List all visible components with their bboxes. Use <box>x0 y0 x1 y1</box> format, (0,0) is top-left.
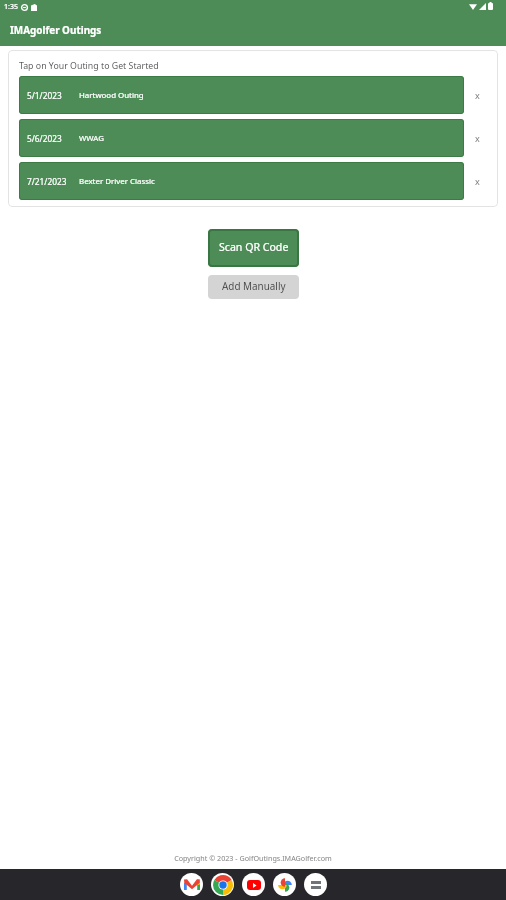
button[interactable]: Scan QR Code <box>208 229 299 267</box>
button[interactable]: Remove outing <box>464 119 487 157</box>
staticText: Hartwood Outing <box>79 90 144 101</box>
button[interactable]: Chrome <box>211 873 234 896</box>
staticText: x <box>475 132 480 144</box>
staticText: 1:35 <box>4 2 18 12</box>
button[interactable]: App <box>304 873 327 896</box>
button[interactable]: 5/6/2023 <box>19 119 464 157</box>
button[interactable]: 7/21/2023 <box>19 162 464 200</box>
staticText: x <box>475 175 480 187</box>
staticText: Add Manually <box>222 279 286 292</box>
staticText: 5/1/2023 <box>27 90 79 101</box>
staticText: x <box>475 89 480 101</box>
staticText: 7/21/2023 <box>27 176 79 187</box>
button[interactable]: Gmail <box>180 873 203 896</box>
button[interactable]: Google Photos <box>273 873 296 896</box>
button[interactable]: Add Manually <box>208 275 299 299</box>
button[interactable]: 5/1/2023 <box>19 76 464 114</box>
button[interactable]: Remove outing <box>464 162 487 200</box>
button[interactable]: YouTube <box>242 873 265 896</box>
staticText: IMAgolfer Outings <box>10 23 102 36</box>
staticText: Tap on Your Outing to Get Started <box>19 60 159 72</box>
staticText: Scan QR Code <box>219 240 289 254</box>
button[interactable]: Remove outing <box>464 76 487 114</box>
staticText: Bexter Driver Classic <box>79 176 155 187</box>
staticText: Copyright © 2023 - GolfOutings.IMAGolfer… <box>0 853 506 863</box>
staticText: WWAG <box>79 133 104 144</box>
staticText: 5/6/2023 <box>27 133 79 144</box>
